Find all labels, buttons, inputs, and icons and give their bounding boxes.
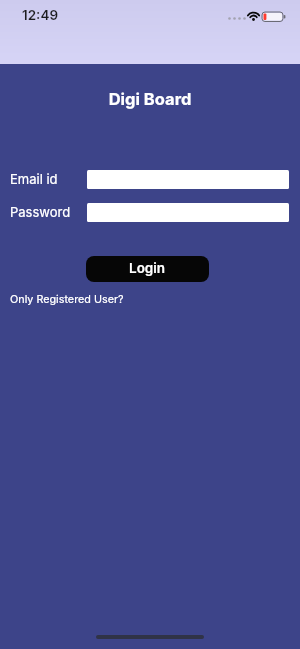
button[interactable] (87, 203, 289, 222)
staticText: 12:49 (22, 7, 59, 23)
staticText: Email id (10, 171, 58, 187)
staticText: Password (10, 204, 71, 220)
button[interactable]: Login (86, 256, 209, 282)
staticText: Login (129, 260, 166, 276)
staticText: Digi Board (0, 89, 300, 109)
button[interactable] (87, 170, 289, 189)
button[interactable]: Only Registered User? (10, 293, 124, 306)
